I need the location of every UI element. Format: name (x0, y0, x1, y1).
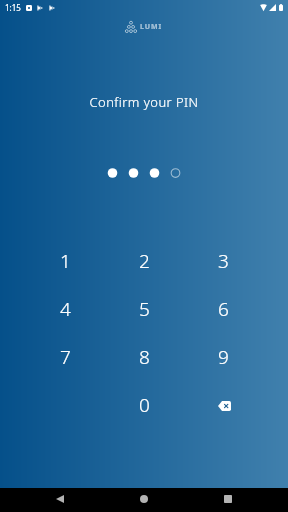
button[interactable]: 2 (105, 237, 184, 285)
other: Backspace (209, 391, 239, 421)
button[interactable]: 0 (105, 381, 184, 429)
staticText: 1:15 (5, 2, 21, 13)
button[interactable]: Backspace (184, 381, 263, 429)
staticText: Confirm your PIN (0, 93, 288, 111)
button[interactable]: Back (48, 487, 72, 511)
button[interactable]: Home (132, 487, 156, 511)
staticText: 2 (139, 248, 150, 274)
staticText: 6 (218, 296, 229, 322)
button[interactable]: 4 (25, 285, 105, 333)
button[interactable]: 9 (184, 333, 263, 381)
staticText: 8 (139, 344, 150, 370)
staticText: 0 (139, 392, 150, 418)
button[interactable]: 3 (184, 237, 263, 285)
button[interactable]: 5 (105, 285, 184, 333)
button[interactable]: 7 (25, 333, 105, 381)
staticText: 1 (60, 248, 71, 274)
staticText: 3 (218, 248, 229, 274)
button[interactable]: 8 (105, 333, 184, 381)
staticText: 4 (60, 296, 71, 322)
staticText: 5 (139, 296, 150, 322)
staticText: LUMI (140, 22, 163, 32)
button[interactable]: 6 (184, 285, 263, 333)
staticText: 7 (60, 344, 71, 370)
button[interactable]: Recents (216, 487, 240, 511)
button[interactable]: 1 (25, 237, 105, 285)
staticText: 9 (218, 344, 229, 370)
